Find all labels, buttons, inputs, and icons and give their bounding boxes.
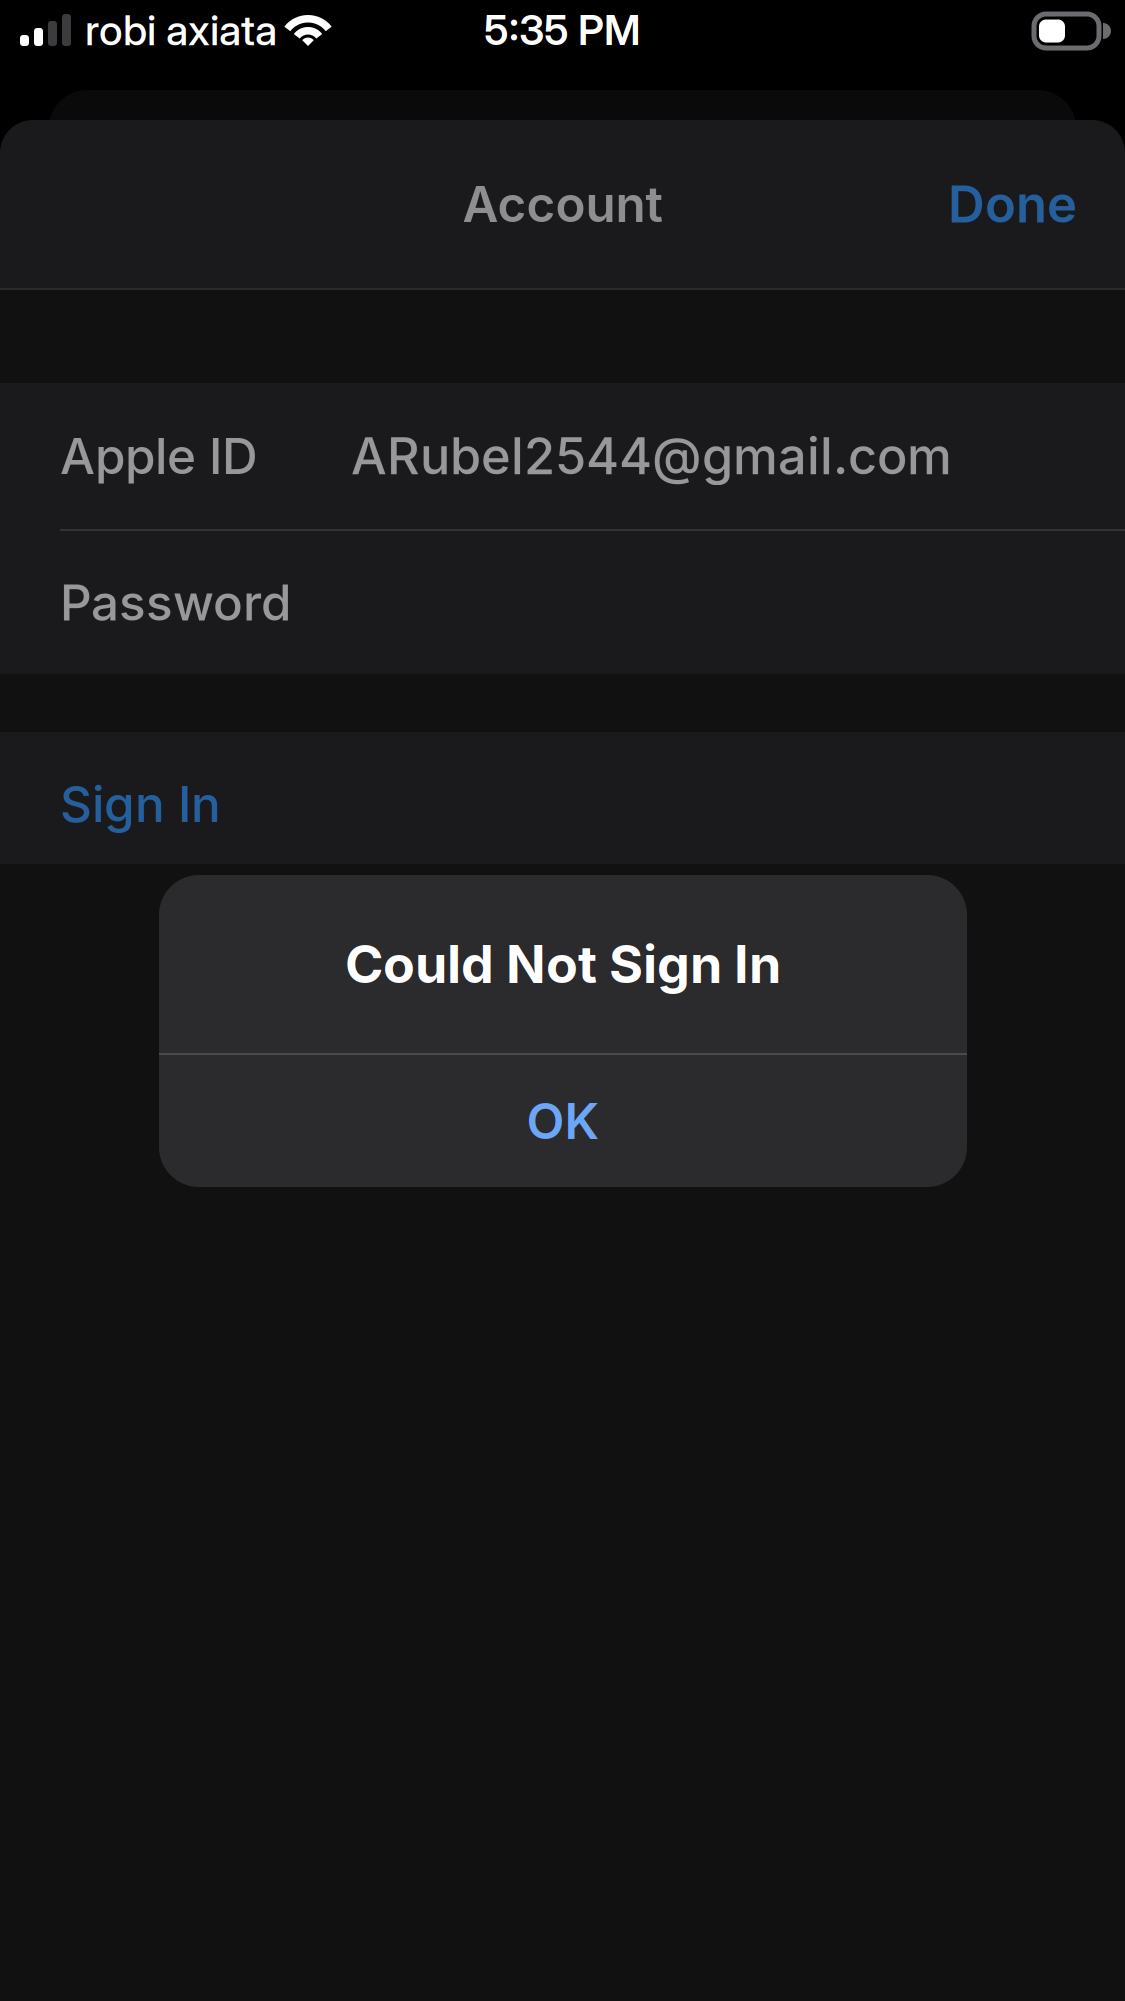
staticText: Sign In [60,774,221,834]
button[interactable]: Apple ID [0,383,1125,529]
staticText: robi axiata [85,5,277,55]
staticText: ARubel2544@gmail.com [351,425,952,486]
staticText: 5:35 PM [484,5,641,55]
staticText: Done [948,173,1077,235]
button[interactable]: Password [0,531,1125,674]
staticText: Account [462,174,662,234]
staticText: Apple ID [60,426,258,486]
staticText: Could Not Sign In [345,932,781,995]
button[interactable]: Sign In [0,732,1125,864]
button[interactable]: Done [924,133,1101,275]
button[interactable]: OK [159,1055,967,1187]
staticText: Password [60,573,291,632]
staticText: OK [526,1091,599,1151]
